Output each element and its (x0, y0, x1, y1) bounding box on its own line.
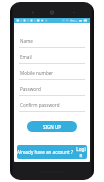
staticText: Password (20, 86, 41, 92)
staticText: Name (20, 38, 33, 44)
button[interactable]: Name (19, 35, 85, 51)
button[interactable]: Confirm password (19, 99, 85, 115)
staticText: Mobile number (20, 70, 54, 76)
button[interactable]: Email (19, 51, 85, 67)
staticText: Confirm password (20, 102, 60, 108)
staticText: Already have an account ? (17, 149, 75, 155)
button[interactable]: Password (19, 83, 85, 99)
staticText: Email (20, 54, 32, 60)
staticText: Login (75, 146, 87, 158)
button[interactable]: SIGN UP (27, 121, 77, 132)
button[interactable]: Already have an account ? (17, 145, 87, 159)
button[interactable]: Mobile number (19, 67, 85, 83)
staticText: SIGN UP (43, 124, 62, 130)
